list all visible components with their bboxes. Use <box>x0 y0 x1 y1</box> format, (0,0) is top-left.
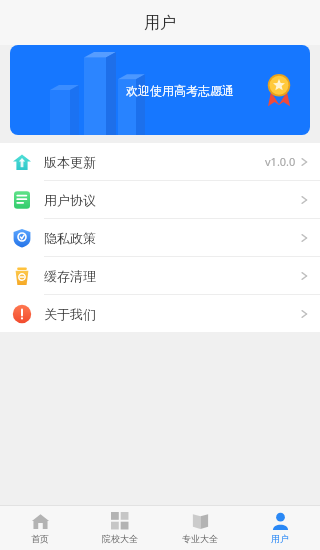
staticText: 关于我们 <box>44 306 96 322</box>
staticText: v1.0.0 <box>265 154 296 169</box>
button[interactable]: 欢迎使用高考志愿通 <box>10 45 310 135</box>
staticText: 院校大全 <box>102 533 138 544</box>
staticText: 缓存清理 <box>44 268 96 284</box>
staticText: 首页 <box>31 533 49 544</box>
staticText: 专业大全 <box>182 533 218 544</box>
button[interactable]: 用户 <box>240 506 320 550</box>
button[interactable]: 隐私政策 <box>0 219 320 256</box>
button[interactable]: 专业大全 <box>160 506 240 550</box>
button[interactable]: 版本更新 <box>0 143 320 180</box>
staticText: 欢迎使用高考志愿通 <box>126 83 234 98</box>
staticText: 用户 <box>271 533 289 544</box>
button[interactable]: 首页 <box>0 506 80 550</box>
staticText: 用户 <box>144 13 176 33</box>
button[interactable]: 用户协议 <box>0 181 320 218</box>
staticText: 隐私政策 <box>44 230 96 246</box>
button[interactable]: 缓存清理 <box>0 257 320 294</box>
button[interactable]: 院校大全 <box>80 506 160 550</box>
button[interactable]: 关于我们 <box>0 295 320 332</box>
staticText: 用户协议 <box>44 192 96 208</box>
staticText: 版本更新 <box>44 154 96 170</box>
